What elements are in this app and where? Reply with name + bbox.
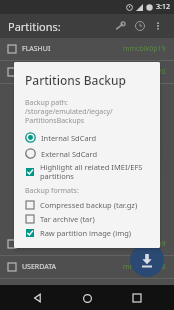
staticText: Backup formats: [25, 186, 79, 196]
staticText: mmcblk0p38 [123, 262, 166, 272]
button[interactable]: Highlight all related IMEI/EFS partition… [25, 162, 152, 181]
button[interactable]: USERDATA [0, 256, 174, 278]
staticText: External SdCard [41, 149, 98, 159]
staticText: USERDATA [22, 262, 57, 272]
button[interactable]: More options [150, 18, 166, 34]
staticText: Raw partition image (img) [40, 228, 132, 238]
button[interactable]: Compressed backup (tar.gz) [25, 200, 152, 210]
staticText: mmcblk0p9 [127, 239, 166, 249]
staticText: Backup path: /storage/emulated/legacy/ P… [25, 98, 113, 125]
button[interactable]: Back [26, 286, 50, 310]
button[interactable]: RECOVERY [0, 61, 174, 83]
button[interactable]: TZB [0, 233, 174, 255]
button[interactable]: Recents [125, 286, 149, 310]
staticText: RECOVERY [22, 67, 57, 77]
staticText: FLASHUI [22, 44, 51, 54]
staticText: 3:12 [156, 2, 170, 12]
staticText: Partitions Backup [25, 72, 127, 88]
staticText: Tar archive (tar) [40, 214, 95, 224]
button[interactable]: FLASHUI [0, 38, 174, 60]
staticText: Partitions: [8, 19, 61, 34]
button[interactable]: Tar archive (tar) [25, 214, 152, 224]
button[interactable]: Raw partition image (img) [25, 228, 152, 238]
staticText: Internal SdCard [41, 133, 97, 143]
button[interactable]: Internal SdCard [25, 132, 152, 143]
button[interactable]: External SdCard [25, 148, 152, 159]
staticText: mmcblk0p19 [123, 44, 166, 54]
button[interactable]: Tools [110, 16, 130, 36]
staticText: TZB [22, 239, 35, 249]
staticText: Highlight all related IMEI/EFS partition… [40, 162, 143, 181]
staticText: Compressed backup (tar.gz) [40, 200, 138, 210]
staticText: mmcblk0p20 [123, 67, 166, 77]
button[interactable]: History [130, 16, 150, 36]
button[interactable]: Home [75, 286, 99, 310]
button[interactable]: Backup [130, 243, 164, 277]
